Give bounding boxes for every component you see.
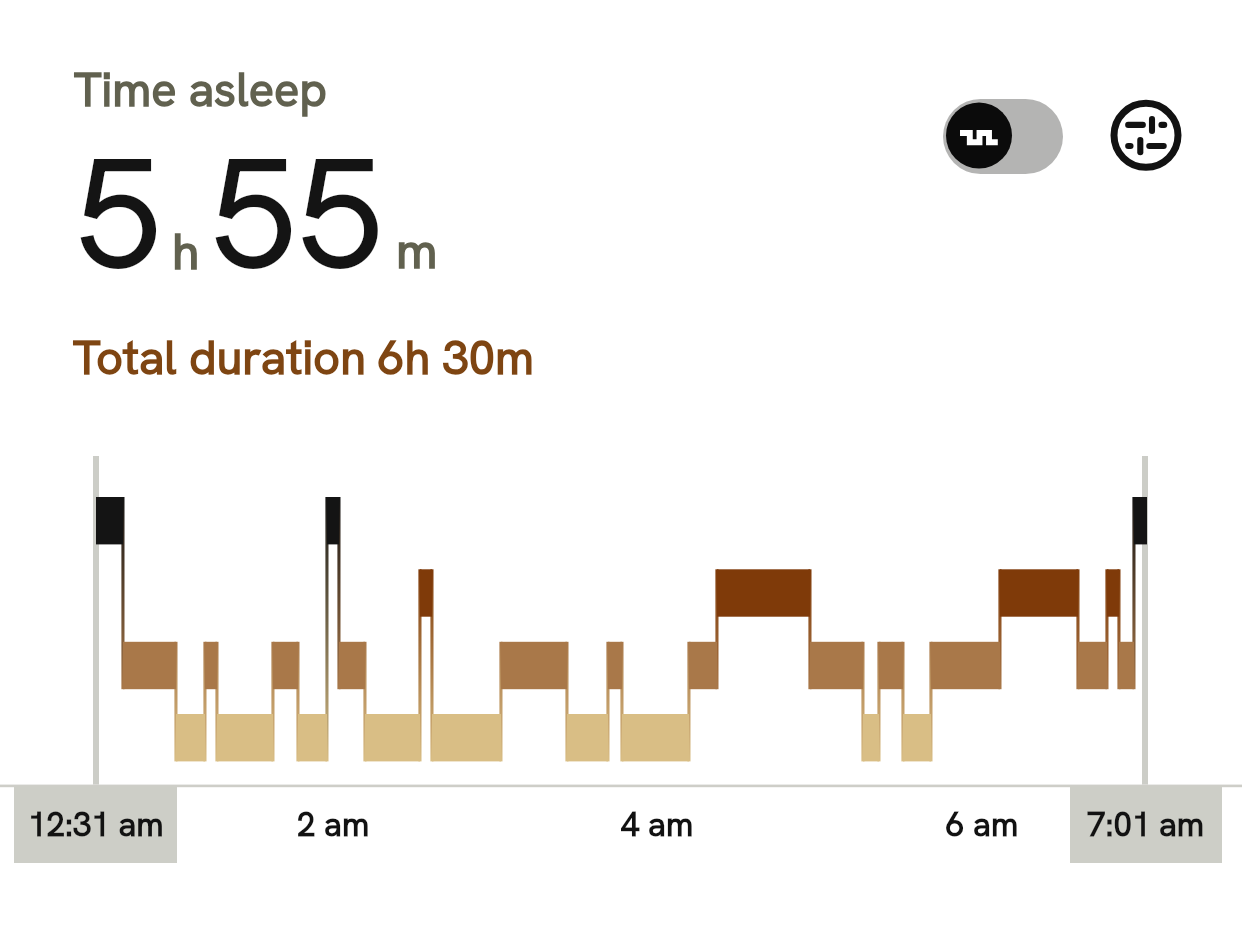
staticText: Total duration 6h 30m	[73, 327, 534, 388]
staticText: 12:31 am	[28, 803, 164, 846]
staticText: 4 am	[621, 803, 694, 846]
staticText: m	[396, 218, 438, 283]
button[interactable]: Adjust sleep settings	[1108, 97, 1184, 173]
staticText: 5	[75, 113, 162, 315]
button[interactable]: Show sleep stages	[943, 99, 1063, 174]
staticText: 55	[210, 113, 384, 315]
staticText: 7:01 am	[1087, 803, 1205, 846]
staticText: 6 am	[946, 803, 1019, 846]
staticText: h	[172, 219, 200, 284]
staticText: 2 am	[297, 803, 370, 846]
staticText: Time asleep	[74, 59, 328, 120]
